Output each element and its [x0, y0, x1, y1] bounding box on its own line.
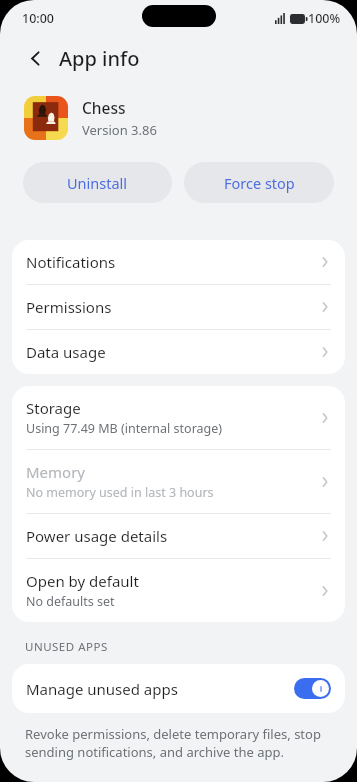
staticText: Notifications: [26, 252, 116, 272]
staticText: Uninstall: [67, 173, 128, 193]
staticText: Permissions: [26, 297, 112, 317]
staticText: Chess: [82, 97, 126, 118]
staticText: 100%: [308, 10, 341, 27]
button[interactable]: Open by default: [12, 559, 345, 622]
button[interactable]: Notifications: [12, 240, 345, 285]
button[interactable]: Back: [22, 45, 48, 71]
staticText: Manage unused apps: [26, 679, 294, 699]
button[interactable]: Memory: [12, 450, 345, 514]
button[interactable]: Storage: [12, 386, 345, 450]
button[interactable]: Manage unused apps: [12, 664, 345, 713]
staticText: Storage: [26, 398, 81, 418]
button[interactable]: Permissions: [12, 285, 345, 330]
staticText: UNUSED APPS: [25, 639, 108, 655]
staticText: Force stop: [224, 173, 295, 193]
staticText: App info: [59, 45, 140, 72]
button[interactable]: Data usage: [12, 330, 345, 374]
button[interactable]: Force stop: [184, 162, 334, 203]
button[interactable]: Uninstall: [23, 162, 172, 203]
staticText: No memory used in last 3 hours: [26, 484, 214, 501]
staticText: 10:00: [22, 10, 55, 27]
button[interactable]: Power usage details: [12, 514, 345, 559]
staticText: Using 77.49 MB (internal storage): [26, 420, 223, 437]
staticText: Data usage: [26, 342, 106, 362]
staticText: Version 3.86: [82, 121, 157, 139]
staticText: Open by default: [26, 571, 139, 591]
staticText: No defaults set: [26, 593, 115, 610]
staticText: Power usage details: [26, 526, 168, 546]
staticText: Revoke permissions, delete temporary fil…: [25, 725, 332, 761]
staticText: Memory: [26, 462, 86, 482]
